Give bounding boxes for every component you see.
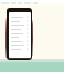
button[interactable] bbox=[9, 43, 31, 47]
button[interactable] bbox=[9, 47, 31, 51]
button[interactable] bbox=[9, 19, 31, 23]
button[interactable] bbox=[9, 31, 31, 35]
button[interactable] bbox=[9, 35, 31, 39]
button[interactable]: Personal organiser caption bbox=[1, 2, 64, 4]
button[interactable] bbox=[9, 23, 31, 27]
button[interactable] bbox=[9, 15, 31, 19]
button[interactable] bbox=[9, 27, 31, 31]
button[interactable] bbox=[9, 39, 31, 43]
